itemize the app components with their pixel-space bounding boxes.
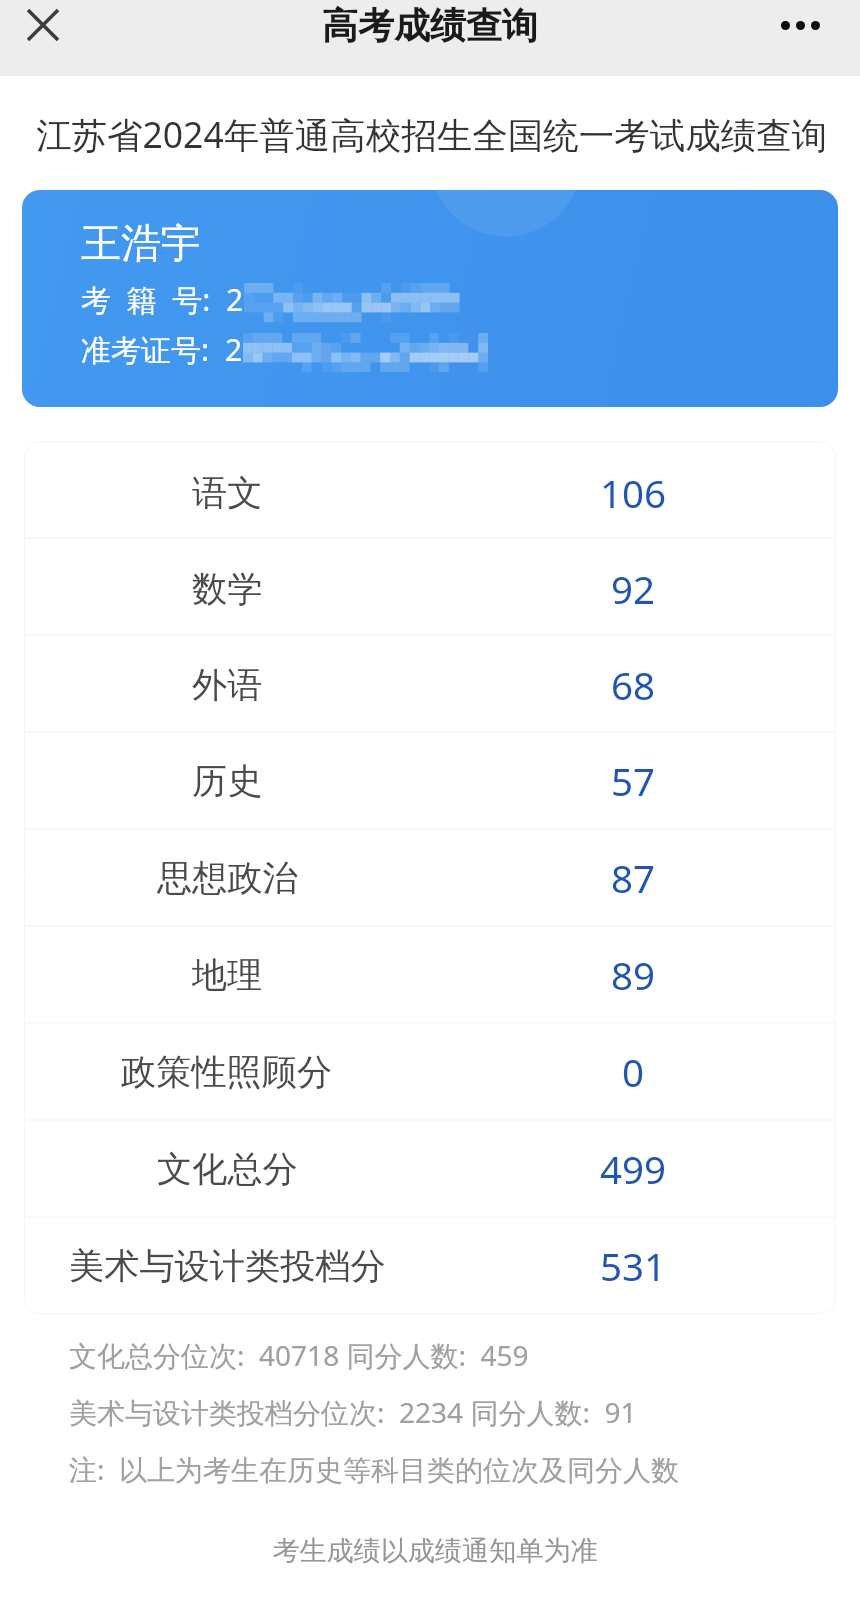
staticText: 语文: [192, 471, 263, 515]
staticText: 文化总分位次: 40718 同分人数: 459: [69, 1336, 529, 1374]
staticText: 思想政治: [157, 856, 298, 900]
staticText: 数学: [192, 567, 263, 611]
staticText: 531: [600, 1240, 667, 1292]
staticText: 92: [611, 563, 656, 615]
staticText: 68: [611, 659, 656, 711]
button[interactable]: 地理: [24, 926, 836, 1023]
staticText: 87: [611, 852, 656, 904]
staticText: 历史: [192, 759, 263, 803]
button[interactable]: 语文: [24, 445, 836, 541]
staticText: 江苏省2024年普通高校招生全国统一考试成绩查询: [36, 110, 860, 158]
staticText: 文化总分: [157, 1147, 298, 1191]
staticText: 考 籍 号:: [81, 279, 226, 320]
staticText: 57: [611, 755, 656, 807]
staticText: 政策性照顾分: [121, 1050, 333, 1094]
staticText: 地理: [192, 953, 263, 997]
staticText: 考生成绩以成绩通知单为准: [272, 1534, 598, 1568]
staticText: 2: [226, 279, 244, 320]
button[interactable]: 美术与设计类投档分: [24, 1217, 836, 1314]
staticText: 美术与设计类投档分位次: 2234 同分人数: 91: [69, 1393, 637, 1431]
button[interactable]: 文化总分: [24, 1120, 836, 1217]
button[interactable]: 数学: [24, 541, 836, 637]
staticText: 美术与设计类投档分: [69, 1244, 386, 1288]
staticText: 注: 以上为考生在历史等科目类的位次及同分人数: [69, 1450, 680, 1488]
staticText: 2: [225, 329, 243, 370]
staticText: 499: [600, 1143, 667, 1195]
staticText: 高考成绩查询: [322, 3, 538, 48]
staticText: 外语: [192, 663, 263, 707]
button[interactable]: 思想政治: [24, 829, 836, 926]
staticText: 89: [611, 949, 656, 1001]
button[interactable]: 外语: [24, 637, 836, 733]
button[interactable]: 历史: [24, 733, 836, 829]
staticText: 0: [622, 1046, 645, 1098]
staticText: 106: [600, 467, 667, 519]
staticText: 王浩宇: [81, 218, 201, 268]
staticText: 准考证号:: [81, 329, 225, 370]
button[interactable]: More options: [765, 0, 835, 50]
button[interactable]: 政策性照顾分: [24, 1023, 836, 1120]
button[interactable]: Close: [8, 0, 78, 50]
